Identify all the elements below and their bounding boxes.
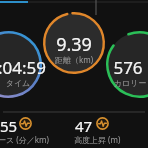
staticText: 距離（km): [43, 54, 105, 65]
staticText: ース (分／km): [0, 134, 49, 145]
staticText: 9.39: [43, 32, 105, 57]
staticText: カロリー: [100, 78, 148, 88]
staticText: 55: [0, 116, 18, 136]
button[interactable]: [43, 12, 105, 74]
button[interactable]: [0, 31, 42, 98]
other: Pace metric: [19, 117, 32, 130]
staticText: 47: [75, 116, 93, 136]
staticText: 576: [98, 56, 148, 79]
staticText: タイム: [0, 78, 48, 88]
other: Elevation gain metric: [96, 117, 109, 130]
staticText: :04:59: [0, 56, 52, 79]
button[interactable]: 47: [74, 113, 148, 148]
button[interactable]: [106, 31, 148, 98]
button[interactable]: 55: [0, 113, 74, 148]
staticText: 高度上昇 (m): [74, 134, 121, 145]
